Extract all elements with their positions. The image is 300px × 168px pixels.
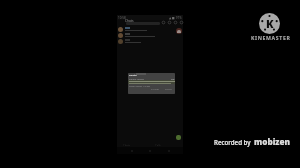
staticText: K [266, 16, 274, 31]
staticText: Delete [129, 73, 137, 76]
staticText: Chats [123, 144, 131, 146]
button[interactable]: CANCEL [150, 88, 161, 91]
button[interactable]: New message [176, 135, 181, 140]
button[interactable]: Calls [150, 143, 166, 147]
staticText: Off [171, 77, 175, 80]
staticText: CANCEL [151, 88, 160, 91]
button[interactable]: toolbar action [172, 20, 178, 25]
staticText: KINEMASTER [251, 34, 291, 41]
staticText: 10:58 [118, 16, 126, 20]
button[interactable]: CLEAR [164, 88, 173, 91]
staticText: CLEAR [165, 88, 172, 91]
button[interactable]: toolbar action [178, 20, 184, 25]
button[interactable] [118, 26, 184, 32]
button[interactable] [118, 38, 184, 44]
staticText: Clear cache 1.2 GB [129, 84, 150, 87]
button[interactable]: toolbar action [166, 20, 172, 25]
button[interactable]: Chats [118, 143, 136, 147]
button[interactable]: Recent apps [165, 148, 173, 154]
staticText: Calls [155, 144, 161, 146]
staticText: Recorded by [214, 138, 251, 146]
staticText: ▲ ■ 97% [169, 16, 182, 20]
staticText: mobizen [254, 136, 291, 147]
button[interactable]: Home [146, 148, 154, 154]
button[interactable]: toolbar action [160, 20, 166, 25]
staticText: Chats [125, 19, 134, 23]
button[interactable]: Back [128, 148, 136, 154]
staticText: Delete media [129, 77, 144, 80]
button[interactable] [118, 32, 184, 38]
